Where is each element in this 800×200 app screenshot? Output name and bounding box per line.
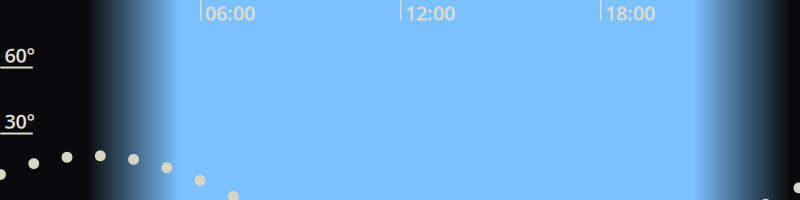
staticText: 60° [4, 42, 35, 68]
staticText: 30° [4, 108, 35, 134]
staticText: 06:00 [205, 0, 255, 26]
staticText: 12:00 [405, 0, 455, 26]
staticText: 18:00 [605, 0, 655, 26]
button[interactable]: Moon altitude chart [0, 0, 800, 200]
